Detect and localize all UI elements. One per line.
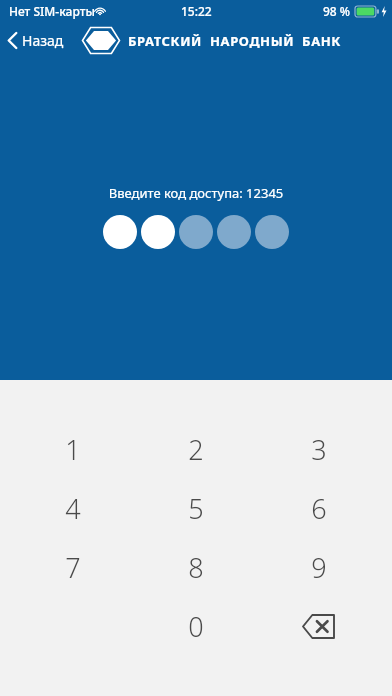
button[interactable]: 6 [257, 479, 380, 538]
staticText: 0 [188, 608, 204, 645]
staticText: 15:22 [181, 3, 212, 19]
button[interactable]: 9 [257, 538, 380, 597]
staticText: 7 [65, 549, 81, 586]
staticText: 9 [311, 549, 327, 586]
staticText: 5 [188, 490, 204, 527]
button[interactable]: Удалить [257, 597, 380, 656]
staticText: Нет SIM-карты [9, 3, 95, 19]
staticText: БРАТСКИЙ НАРОДНЫЙ БАНК [128, 32, 341, 50]
staticText: Назад [22, 31, 64, 50]
staticText: Введите код доступа: 12345 [0, 184, 392, 202]
button[interactable]: 2 [134, 420, 257, 479]
button[interactable]: 8 [134, 538, 257, 597]
button[interactable]: 5 [134, 479, 257, 538]
button[interactable]: 7 [12, 538, 134, 597]
button[interactable]: 1 [12, 420, 134, 479]
staticText: 2 [188, 431, 204, 468]
staticText: 98 % [323, 3, 351, 19]
staticText: 1 [65, 431, 81, 468]
staticText: 4 [65, 490, 81, 527]
staticText: 3 [311, 431, 327, 468]
button[interactable]: 0 [134, 597, 257, 656]
staticText: 6 [311, 490, 327, 527]
staticText: 8 [188, 549, 204, 586]
button[interactable]: Назад [0, 27, 72, 54]
button[interactable]: 4 [12, 479, 134, 538]
button[interactable]: 3 [257, 420, 380, 479]
